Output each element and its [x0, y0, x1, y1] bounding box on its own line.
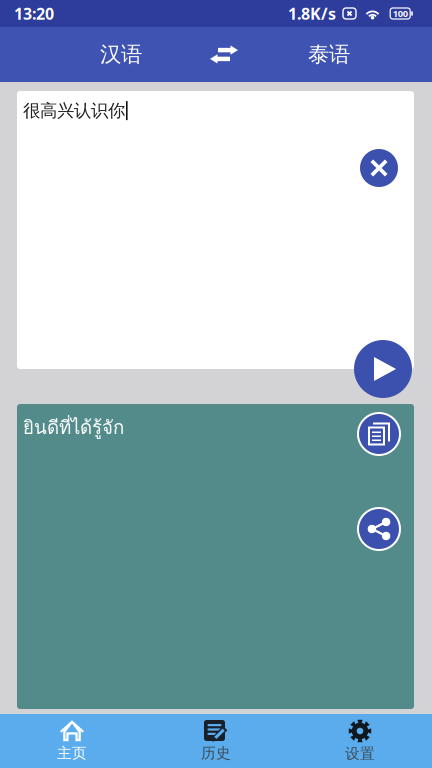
button[interactable]: 设置	[288, 714, 432, 768]
staticText: ยินดีที่ได้รู้จัก	[23, 413, 124, 442]
staticText: 历史	[201, 744, 231, 762]
staticText: 主页	[57, 744, 87, 762]
button[interactable]: Copy translation	[358, 413, 400, 455]
button[interactable]: Swap languages	[195, 27, 253, 82]
button[interactable]: Share translation	[358, 508, 400, 550]
staticText: 设置	[345, 744, 375, 762]
button[interactable]: 汉语	[66, 27, 176, 82]
staticText: 1.8K/s	[288, 3, 336, 24]
staticText: 汉语	[100, 41, 142, 68]
button[interactable]: Translate	[354, 340, 412, 398]
button[interactable]: 历史	[144, 714, 288, 768]
staticText: 100	[393, 7, 408, 20]
staticText: 泰语	[308, 41, 350, 68]
button[interactable]: Clear text	[360, 149, 398, 187]
button[interactable]: 主页	[0, 714, 144, 768]
staticText: 13:20	[14, 3, 54, 24]
staticText: 很高兴认识你	[23, 100, 125, 121]
button[interactable]: 泰语	[274, 27, 384, 82]
